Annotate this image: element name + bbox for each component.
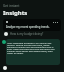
staticText: Insights bbox=[3, 9, 28, 17]
staticText: Analyse my recent spending trends. bbox=[6, 25, 50, 29]
button[interactable]: Analyse my recent spending trends. bbox=[3, 19, 61, 31]
button[interactable]: Your spending dropped 12% versus last mo… bbox=[6, 39, 60, 65]
staticText: How is my budget doing? bbox=[10, 32, 44, 36]
staticText: Your spending dropped 12% versus last mo… bbox=[7, 41, 58, 54]
staticText: Get instant bbox=[3, 4, 20, 8]
button[interactable]: Profile bbox=[3, 66, 7, 70]
